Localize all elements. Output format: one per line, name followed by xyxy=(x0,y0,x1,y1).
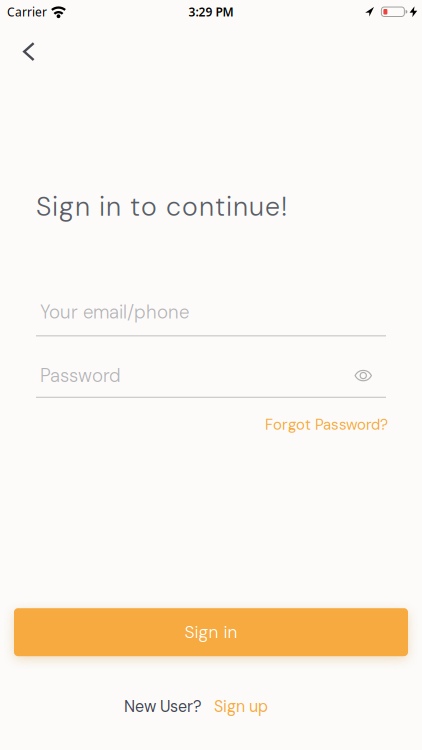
button[interactable]: Forgot Password? xyxy=(265,415,388,434)
staticText: New User? xyxy=(124,696,202,717)
staticText: Password xyxy=(40,363,121,388)
button[interactable]: Sign up xyxy=(214,696,268,717)
button[interactable]: Sign in xyxy=(14,608,408,656)
staticText: 3:29 PM xyxy=(188,4,233,20)
staticText: Sign in to continue! xyxy=(36,189,287,224)
staticText: Sign in xyxy=(184,621,237,643)
button[interactable]: Show password xyxy=(354,370,386,381)
staticText: Sign up xyxy=(214,696,268,717)
staticText: Carrier xyxy=(7,4,47,20)
staticText: Your email/phone xyxy=(40,300,189,324)
button[interactable]: Back xyxy=(0,22,45,67)
staticText: Forgot Password? xyxy=(265,415,388,434)
